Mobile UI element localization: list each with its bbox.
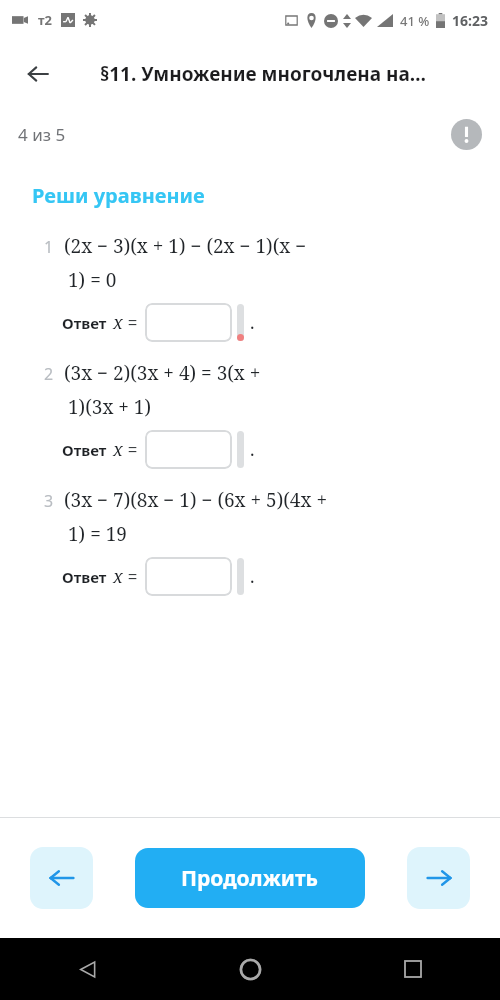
staticText: Ответ (62, 567, 107, 587)
staticText: 16:23 (452, 11, 488, 30)
staticText: . (250, 310, 255, 335)
button[interactable]: Next (407, 847, 470, 909)
staticText: §11. Умножение многочлена на… (100, 61, 426, 87)
button[interactable]: Home (227, 946, 273, 992)
staticText: 1) = 19 (68, 521, 127, 547)
button[interactable]: Back (14, 50, 62, 98)
button[interactable]: Продолжить (135, 848, 365, 908)
staticText: 3 (44, 490, 54, 512)
button[interactable]: Answer input (145, 430, 232, 469)
button[interactable]: Previous (30, 847, 93, 909)
staticText: (2x − 3)(x + 1) − (2x − 1)(x − (64, 233, 307, 259)
staticText: . (250, 437, 255, 462)
staticText: 41 % (400, 12, 430, 30)
button[interactable]: Recents (390, 946, 436, 992)
staticText: 1)(3x + 1) (68, 394, 152, 420)
button[interactable]: Back (64, 946, 110, 992)
staticText: Ответ (62, 440, 107, 460)
staticText: x = (113, 310, 143, 335)
staticText: Ответ (62, 313, 107, 333)
staticText: x = (113, 437, 143, 462)
staticText: (3x − 2)(3x + 4) = 3(x + (64, 360, 261, 386)
button[interactable]: Answer input (145, 557, 232, 596)
staticText: 1) = 0 (68, 267, 117, 293)
staticText: (3x − 7)(8x − 1) − (6x + 5)(4x + (64, 487, 327, 513)
staticText: Продолжить (181, 864, 319, 893)
staticText: 1 (44, 236, 54, 258)
staticText: Реши уравнение (32, 182, 205, 209)
staticText: 2 (44, 363, 54, 385)
staticText: 4 из 5 (18, 123, 66, 146)
staticText: x = (113, 564, 143, 589)
staticText: . (250, 564, 255, 589)
button[interactable]: Answer input (145, 303, 232, 342)
staticText: т2 (38, 11, 53, 29)
button[interactable]: Info (446, 114, 486, 154)
